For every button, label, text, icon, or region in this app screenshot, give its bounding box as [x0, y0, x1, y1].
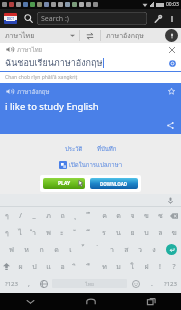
button[interactable]: ว — [133, 241, 147, 258]
button[interactable]: ? — [167, 258, 181, 275]
button[interactable]: ฆ — [167, 224, 181, 241]
button[interactable]: Voice typing — [165, 195, 175, 205]
button[interactable]: แ — [41, 258, 55, 275]
button[interactable]: เ — [63, 241, 77, 258]
button[interactable]: ภาษาอังกฤษ — [101, 28, 181, 43]
button[interactable]: ิ — [69, 258, 83, 275]
staticText: ห — [24, 244, 29, 255]
button[interactable]: ี — [83, 224, 97, 241]
button[interactable]: อ — [55, 258, 69, 275]
button[interactable]: PLAY — [43, 178, 85, 189]
button[interactable]: ึ — [83, 207, 97, 224]
staticText: ภ — [46, 210, 51, 221]
button[interactable]: ะ — [55, 224, 69, 241]
button[interactable]: บ — [139, 224, 153, 241]
staticText: เปิดในการแปลภาษา — [69, 160, 123, 170]
button[interactable]: Share — [165, 120, 176, 131]
staticText: ป — [32, 261, 37, 272]
button[interactable]: ฟ — [4, 241, 19, 258]
staticText: ล — [158, 227, 163, 238]
button[interactable]: ฝ — [139, 258, 153, 275]
button[interactable]: _ — [27, 207, 41, 224]
button[interactable]: Hide keyboard — [0, 293, 61, 310]
button[interactable]: ค — [97, 207, 111, 224]
button[interactable]: ?123 — [159, 275, 181, 292]
button[interactable]: Clear — [166, 44, 177, 55]
button[interactable]: Search — [22, 12, 35, 25]
button[interactable]: ผ — [13, 258, 27, 275]
button[interactable]: . — [145, 275, 159, 292]
button[interactable]: พ — [41, 224, 55, 241]
staticText: ย — [130, 227, 135, 238]
button[interactable]: Listen Thai — [4, 44, 15, 55]
button[interactable]: า — [105, 241, 119, 258]
button[interactable]: ส — [119, 241, 133, 258]
button[interactable]: / — [13, 207, 27, 224]
button[interactable]: Backspace — [167, 207, 181, 224]
button[interactable]: ภาษาไทย — [0, 28, 79, 43]
button[interactable]: Home — [61, 293, 121, 310]
button[interactable]: ประวัติ — [61, 143, 87, 155]
button[interactable]: ท — [97, 258, 111, 275]
staticText: ไทย — [85, 280, 94, 288]
button[interactable]: Search :) — [37, 12, 147, 25]
button[interactable]: Voice input — [165, 29, 178, 42]
button[interactable]: ก — [34, 241, 49, 258]
button[interactable]: ป — [27, 258, 41, 275]
button[interactable]: ! — [153, 258, 167, 275]
button[interactable]: ุ — [69, 207, 83, 224]
button[interactable]: Space — [52, 279, 127, 288]
button[interactable]: ้ — [77, 241, 91, 258]
button[interactable]: ช — [153, 207, 167, 224]
button[interactable]: จ — [125, 207, 139, 224]
staticText: ท — [102, 261, 107, 272]
staticText: ฆ — [171, 227, 177, 238]
button[interactable]: Dictionary — [3, 11, 18, 26]
staticText: PLAY — [58, 180, 71, 187]
button[interactable]: More options — [166, 13, 178, 25]
button[interactable]: Listen English — [4, 86, 15, 97]
button[interactable]: Enter — [161, 241, 181, 258]
button[interactable]: ั — [69, 224, 83, 241]
button[interactable]: ื — [83, 258, 97, 275]
button[interactable]: , — [22, 275, 36, 292]
button[interactable]: ด — [49, 241, 63, 258]
button[interactable]: DOWNLOAD — [90, 178, 138, 189]
staticText: ไ — [18, 227, 22, 238]
button[interactable]: ต — [111, 207, 125, 224]
button[interactable]: Settings — [150, 12, 164, 26]
button[interactable]: เปิดในการแปลภาษา — [56, 159, 126, 171]
button[interactable]: ำ — [27, 224, 41, 241]
button[interactable]: ๆ — [0, 224, 13, 241]
staticText: ๆ — [5, 210, 9, 221]
staticText: Chan chob rīyn phās̄ʹā xangkrit̩ — [5, 74, 78, 81]
staticText: _ — [32, 211, 36, 221]
button[interactable]: Shift — [0, 258, 13, 275]
button[interactable]: ง — [147, 241, 161, 258]
button[interactable]: ที่บันทึก — [93, 143, 121, 155]
button[interactable]: ย — [125, 224, 139, 241]
button[interactable]: ล — [153, 224, 167, 241]
button[interactable]: ไ — [13, 224, 27, 241]
button[interactable]: ห — [19, 241, 34, 258]
button[interactable]: ๆ — [0, 207, 13, 224]
button[interactable]: Emoji — [127, 275, 145, 292]
button[interactable]: ?123 — [0, 275, 22, 292]
button[interactable]: Save translation — [166, 86, 177, 97]
button[interactable]: PLAY — [40, 175, 141, 192]
button[interactable]: ข — [139, 207, 153, 224]
staticText: ถ — [60, 210, 65, 221]
button[interactable]: Swap languages — [80, 28, 100, 43]
staticText: แ — [46, 261, 51, 272]
button[interactable]: ถ — [55, 207, 69, 224]
button[interactable]: ใ — [125, 258, 139, 275]
button[interactable]: น — [111, 224, 125, 241]
button[interactable]: ร — [97, 224, 111, 241]
staticText: ฉันชอบเรียนภาษาอังกฤษ — [5, 56, 103, 70]
button[interactable]: Translate — [167, 58, 177, 68]
button[interactable]: Change language — [36, 275, 52, 292]
button[interactable]: Recents — [121, 293, 181, 310]
button[interactable]: ภ — [41, 207, 55, 224]
button[interactable]: ม — [111, 258, 125, 275]
